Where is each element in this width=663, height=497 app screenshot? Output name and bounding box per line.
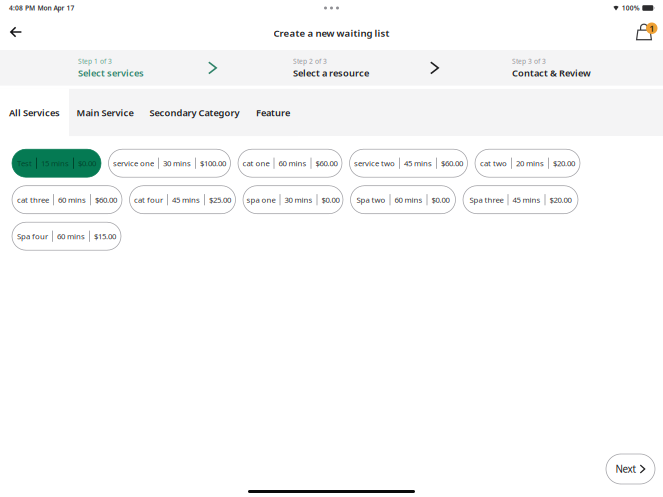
staticText: 45 mins	[512, 194, 540, 205]
staticText: cat two	[480, 158, 507, 168]
staticText: Secondary Category	[149, 106, 239, 119]
staticText: Contact & Review	[512, 67, 591, 79]
button[interactable]: Cart, 1 item	[631, 19, 657, 45]
staticText: $0.00	[431, 194, 449, 205]
button[interactable]: spa one	[243, 186, 343, 214]
button[interactable]: Spa two	[350, 186, 455, 214]
staticText: 60 mins	[57, 231, 85, 241]
staticText: Mon Apr 17	[37, 3, 74, 13]
staticText: $60.00	[441, 158, 463, 168]
staticText: $25.00	[209, 194, 231, 205]
button[interactable]: All Services	[0, 89, 69, 136]
staticText: $20.00	[549, 194, 571, 205]
button[interactable]: Next	[606, 454, 655, 484]
staticText: 15 mins	[41, 158, 69, 168]
button[interactable]: Step 2 of 3	[293, 56, 369, 79]
staticText: Test	[17, 158, 32, 168]
staticText: 60 mins	[278, 158, 306, 168]
staticText: 1	[649, 22, 654, 35]
staticText: Main Service	[76, 106, 133, 119]
button[interactable]: Step 1 of 3	[78, 56, 144, 79]
staticText: $15.00	[94, 231, 116, 241]
staticText: $60.00	[315, 158, 337, 168]
staticText: Step 2 of 3	[293, 56, 327, 66]
button[interactable]: cat four	[129, 186, 235, 214]
staticText: Select services	[78, 67, 144, 79]
staticText: $100.00	[200, 158, 226, 168]
button[interactable]: cat three	[12, 186, 122, 214]
staticText: Spa four	[17, 231, 48, 241]
staticText: Create a new waiting list	[273, 26, 389, 40]
staticText: All Services	[9, 106, 60, 119]
staticText: Step 3 of 3	[512, 56, 546, 66]
staticText: 45 mins	[172, 194, 200, 205]
staticText: 60 mins	[58, 194, 86, 205]
button[interactable]: Test	[12, 149, 101, 177]
staticText: 30 mins	[284, 194, 312, 205]
staticText: 4:08 PM	[9, 3, 35, 13]
staticText: Step 1 of 3	[78, 56, 112, 66]
button[interactable]: Step 3 of 3	[512, 56, 591, 79]
staticText: $60.00	[95, 194, 117, 205]
staticText: Spa three	[469, 194, 503, 205]
staticText: cat four	[134, 194, 163, 205]
staticText: service one	[113, 158, 154, 168]
button[interactable]: Spa three	[463, 186, 578, 214]
staticText: 100%	[622, 3, 640, 13]
staticText: 30 mins	[163, 158, 191, 168]
button[interactable]: Secondary Category	[141, 89, 248, 136]
staticText: service two	[354, 158, 395, 168]
staticText: Spa two	[356, 194, 385, 205]
button[interactable]: Back	[3, 19, 29, 45]
button[interactable]: Spa four	[12, 222, 121, 250]
button[interactable]: service two	[349, 149, 467, 177]
staticText: cat one	[242, 158, 269, 168]
staticText: 20 mins	[516, 158, 544, 168]
staticText: $0.00	[321, 194, 339, 205]
staticText: spa one	[246, 194, 275, 205]
staticText: $0.00	[78, 158, 96, 168]
staticText: 45 mins	[404, 158, 432, 168]
button[interactable]: Main Service	[69, 89, 141, 136]
staticText: cat three	[17, 194, 49, 205]
button[interactable]: Feature	[248, 89, 298, 136]
staticText: 60 mins	[394, 194, 422, 205]
staticText: Feature	[256, 106, 290, 119]
staticText: Next	[615, 462, 636, 476]
button[interactable]: cat two	[475, 149, 580, 177]
staticText: Select a resource	[293, 67, 369, 79]
staticText: $20.00	[553, 158, 575, 168]
button[interactable]: service one	[108, 149, 230, 177]
button[interactable]: cat one	[238, 149, 342, 177]
